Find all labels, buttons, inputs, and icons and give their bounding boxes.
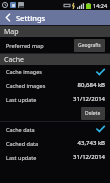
staticText: Settings — [16, 13, 46, 23]
button[interactable]: Cached data — [0, 136, 110, 150]
button[interactable]: Cache data — [0, 122, 110, 136]
staticText: Delete — [85, 110, 101, 117]
button[interactable]: Preferred map — [0, 37, 110, 53]
staticText: Cache data — [6, 126, 35, 133]
staticText: Map — [4, 27, 19, 37]
staticText: Cache images — [6, 68, 42, 75]
button[interactable]: Choose preferred map — [74, 39, 105, 52]
staticText: Last update — [6, 96, 37, 103]
button[interactable]: Cache images — [0, 65, 110, 78]
staticText: 31/12/2014 — [73, 153, 105, 161]
staticText: 14:24 — [93, 2, 108, 9]
staticText: Cached images — [6, 82, 46, 89]
staticText: Preferred map — [6, 42, 44, 49]
staticText: Cache — [4, 55, 24, 65]
button[interactable]: Last update — [0, 92, 110, 106]
button[interactable]: Back — [0, 10, 16, 25]
button[interactable]: Delete cached images — [81, 107, 105, 120]
staticText: 31/12/2014 — [73, 95, 105, 103]
staticText: Cached data — [6, 140, 39, 147]
staticText: 80,684 kB — [77, 81, 105, 89]
staticText: 43,743 kB — [77, 139, 105, 147]
button[interactable]: Last update — [0, 150, 110, 164]
button[interactable]: Cached images — [0, 78, 110, 92]
staticText: Last update — [6, 154, 37, 161]
staticText: Geografis — [78, 42, 101, 49]
